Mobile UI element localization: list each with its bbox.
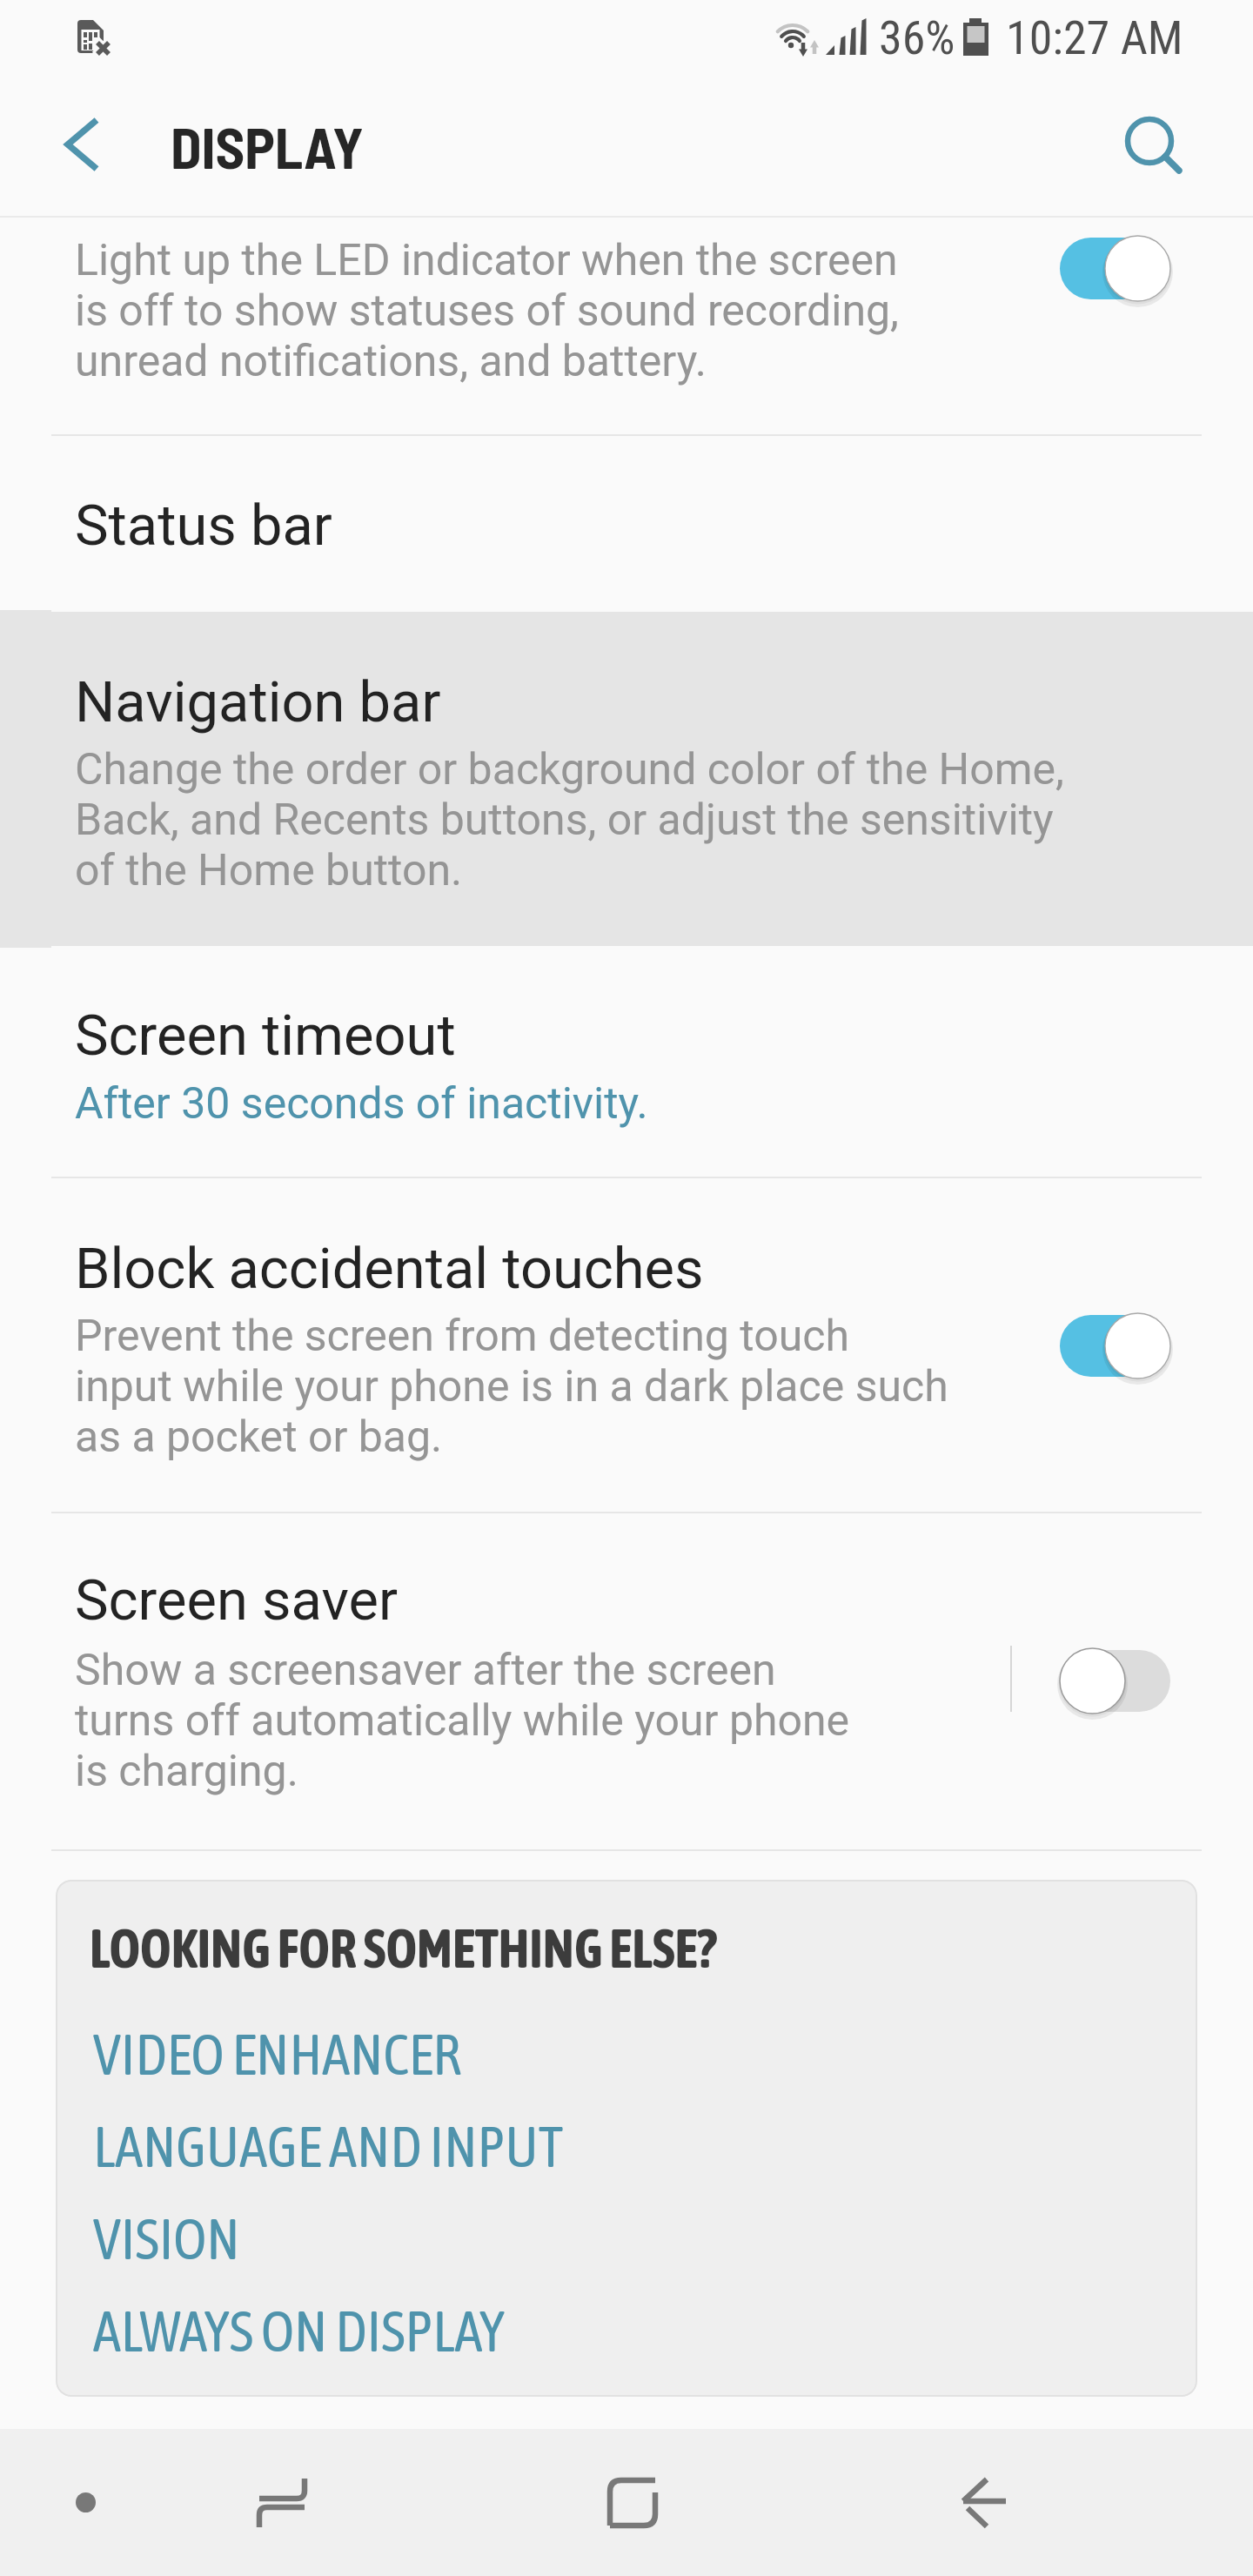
staticText: ALWAYS ON DISPLAY <box>93 2296 506 2364</box>
staticText: LOOKING FOR SOMETHING ELSE? <box>90 1915 717 1979</box>
staticText: Light up the LED indicator when the scre… <box>75 235 899 386</box>
button[interactable]: VISION <box>56 2191 1197 2284</box>
staticText: Block accidental touches <box>75 1237 704 1302</box>
button[interactable]: On <box>1039 1294 1192 1399</box>
button[interactable] <box>0 1178 1253 1512</box>
staticText: Change the order or background color of … <box>75 744 1064 896</box>
button[interactable]: Navigate up <box>27 89 138 200</box>
button[interactable] <box>0 946 1253 1177</box>
button[interactable] <box>0 1513 1253 1849</box>
button[interactable]: Recents <box>212 2429 352 2576</box>
staticText: Show a screensaver after the screen turn… <box>75 1645 850 1796</box>
staticText: 10:27 AM <box>1006 10 1183 66</box>
button[interactable]: Search <box>1097 89 1209 200</box>
staticText: DISPLAY <box>171 112 364 180</box>
button[interactable]: On <box>1039 217 1192 321</box>
staticText: 36% <box>879 10 955 66</box>
staticText: LANGUAGE AND INPUT <box>93 2111 564 2179</box>
button[interactable]: Hide navigation bar <box>7 2429 164 2576</box>
staticText: Screen timeout <box>75 1003 456 1069</box>
staticText: Prevent the screen from detecting touch … <box>75 1311 948 1462</box>
button[interactable] <box>0 436 1253 612</box>
button[interactable]: Off <box>1039 1629 1192 1734</box>
button[interactable]: ALWAYS ON DISPLAY <box>56 2284 1197 2376</box>
staticText: Status bar <box>75 493 332 559</box>
button[interactable]: VIDEO ENHANCER <box>56 2007 1197 2099</box>
button[interactable] <box>0 612 1253 946</box>
button[interactable] <box>0 218 1253 434</box>
button[interactable]: Home <box>563 2429 702 2576</box>
staticText: After 30 seconds of inactivity. <box>75 1078 648 1129</box>
button[interactable]: LANGUAGE AND INPUT <box>56 2099 1197 2191</box>
staticText: VIDEO ENHANCER <box>93 2019 461 2087</box>
staticText: VISION <box>93 2204 240 2271</box>
staticText: Navigation bar <box>75 670 441 735</box>
button[interactable]: Back <box>915 2429 1054 2576</box>
staticText: Screen saver <box>75 1568 398 1633</box>
